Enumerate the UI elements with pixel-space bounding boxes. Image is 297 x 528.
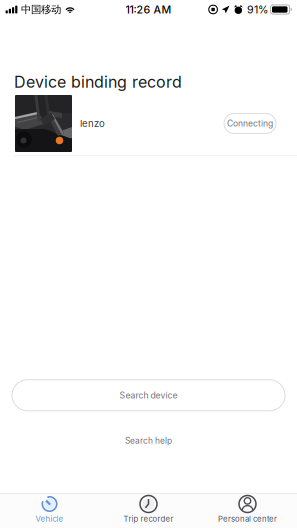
staticText: Search device xyxy=(119,390,177,401)
staticText: Personal center xyxy=(218,514,277,524)
staticText: Search help xyxy=(125,436,172,446)
staticText: Connecting xyxy=(227,118,273,129)
button[interactable]: Connecting xyxy=(224,113,276,133)
staticText: Trip recorder xyxy=(123,514,173,524)
staticText: Device binding record xyxy=(14,72,182,92)
staticText: 91% xyxy=(247,3,268,16)
button[interactable]: Search device xyxy=(12,380,285,411)
staticText: Vehicle xyxy=(35,514,63,524)
button[interactable]: Personal center xyxy=(198,490,297,528)
button[interactable]: Vehicle xyxy=(0,490,99,528)
staticText: 中国移动 xyxy=(21,3,61,16)
button[interactable]: Search help xyxy=(125,434,172,448)
staticText: lenzo xyxy=(80,118,105,129)
staticText: 11:26 AM xyxy=(125,3,171,16)
button[interactable]: Trip recorder xyxy=(99,490,198,528)
